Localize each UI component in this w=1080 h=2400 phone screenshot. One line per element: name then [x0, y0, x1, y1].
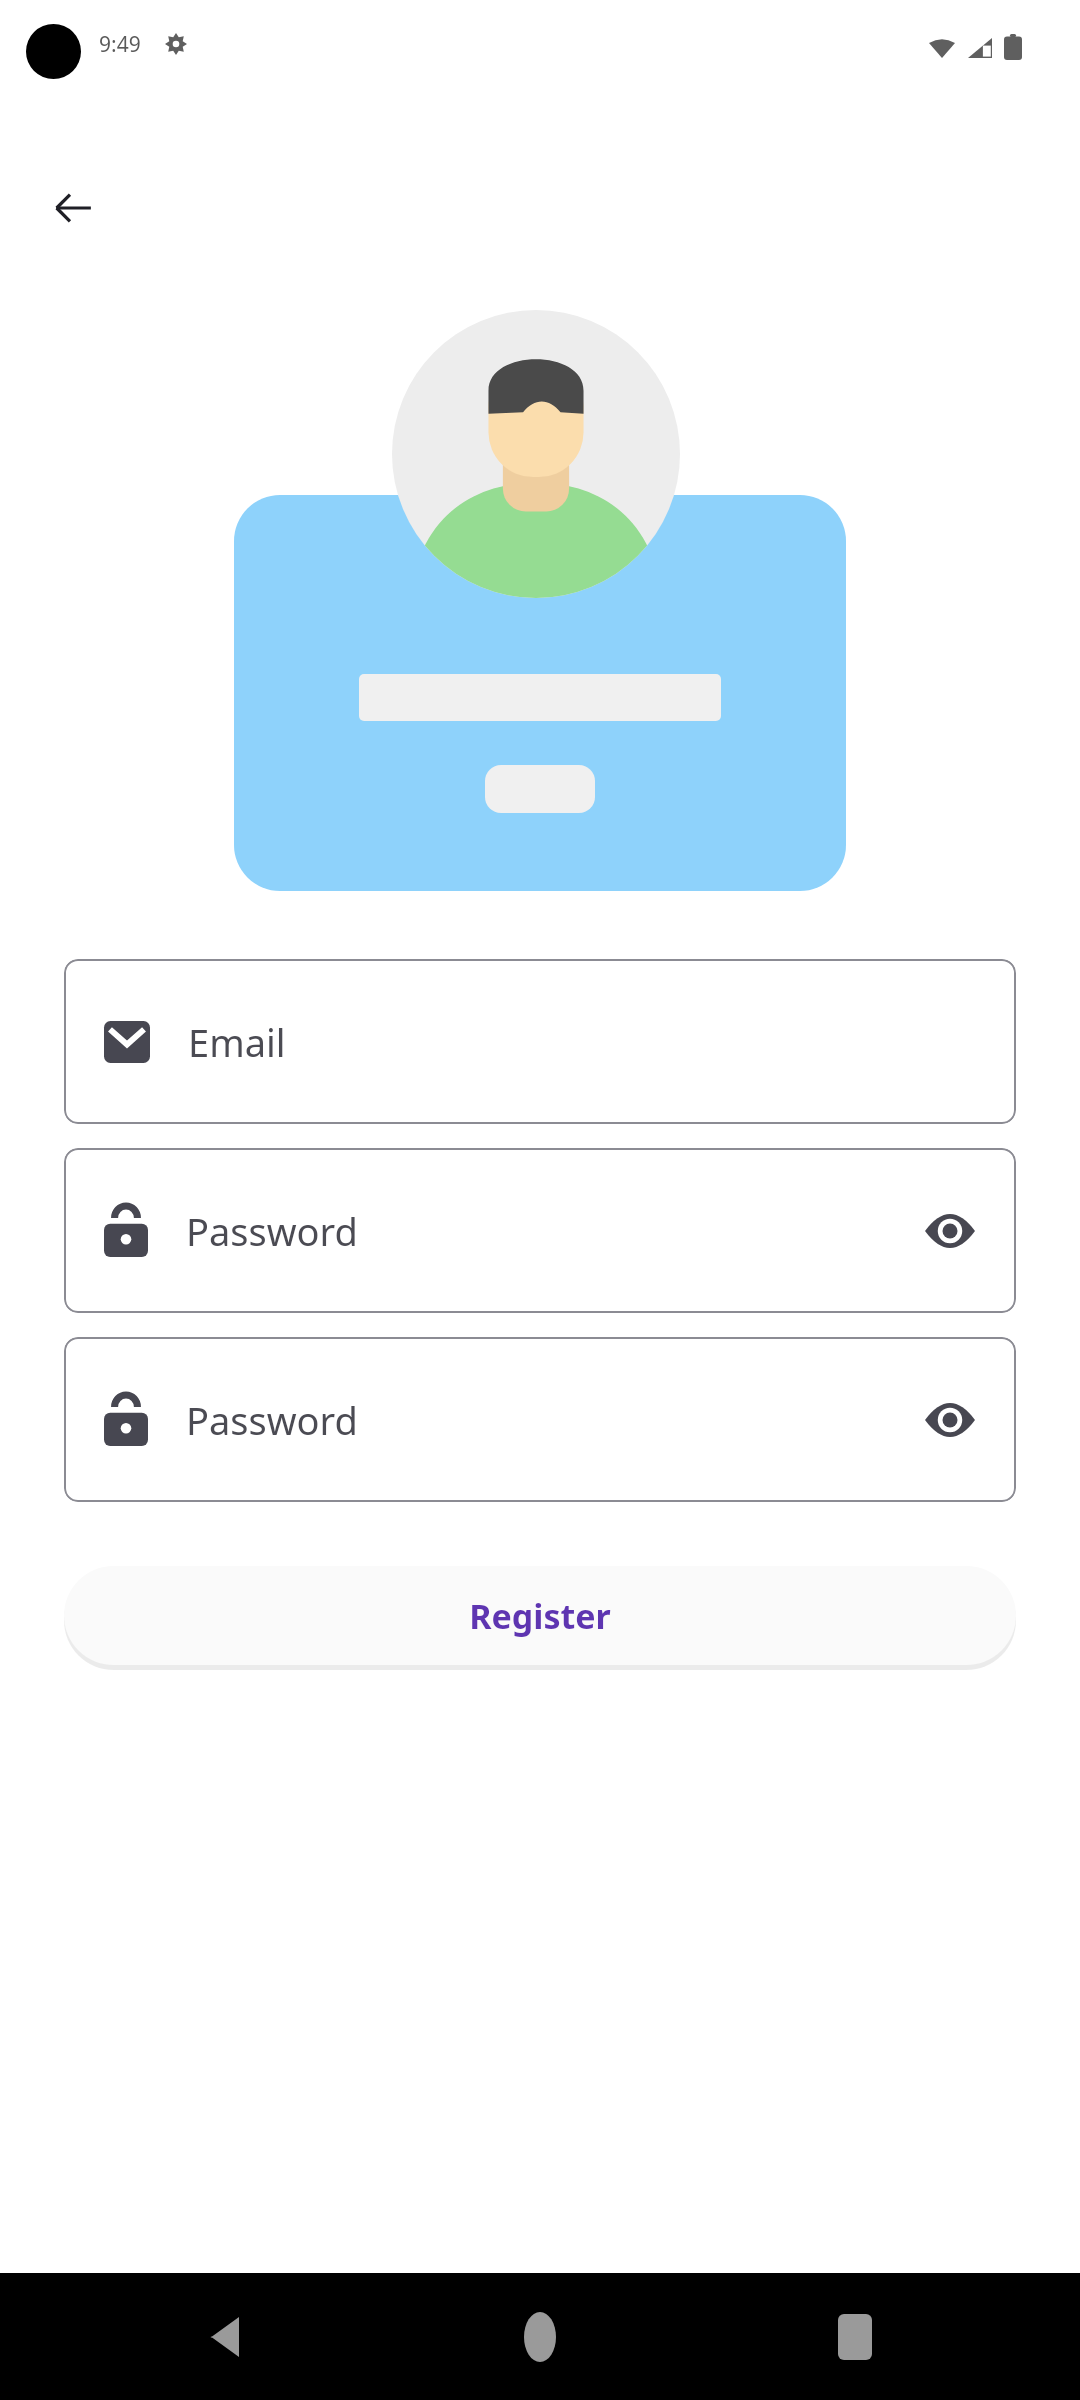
button[interactable]: Back — [25, 160, 121, 256]
staticText: Password — [186, 1205, 358, 1257]
staticText: Register — [469, 1593, 611, 1639]
button[interactable]: Back — [180, 2292, 270, 2382]
button[interactable]: Password — [64, 1337, 1016, 1502]
button[interactable]: Password — [64, 1148, 1016, 1313]
button[interactable]: Show password — [912, 1382, 988, 1458]
button[interactable]: Recent apps — [810, 2292, 900, 2382]
button[interactable]: Email — [64, 959, 1016, 1124]
staticText: Password — [186, 1394, 358, 1446]
button[interactable]: Home — [495, 2292, 585, 2382]
button[interactable]: Show password — [912, 1193, 988, 1269]
staticText: 9:49 — [99, 30, 141, 59]
button[interactable]: Register — [64, 1566, 1016, 1665]
staticText: Email — [188, 1016, 286, 1068]
